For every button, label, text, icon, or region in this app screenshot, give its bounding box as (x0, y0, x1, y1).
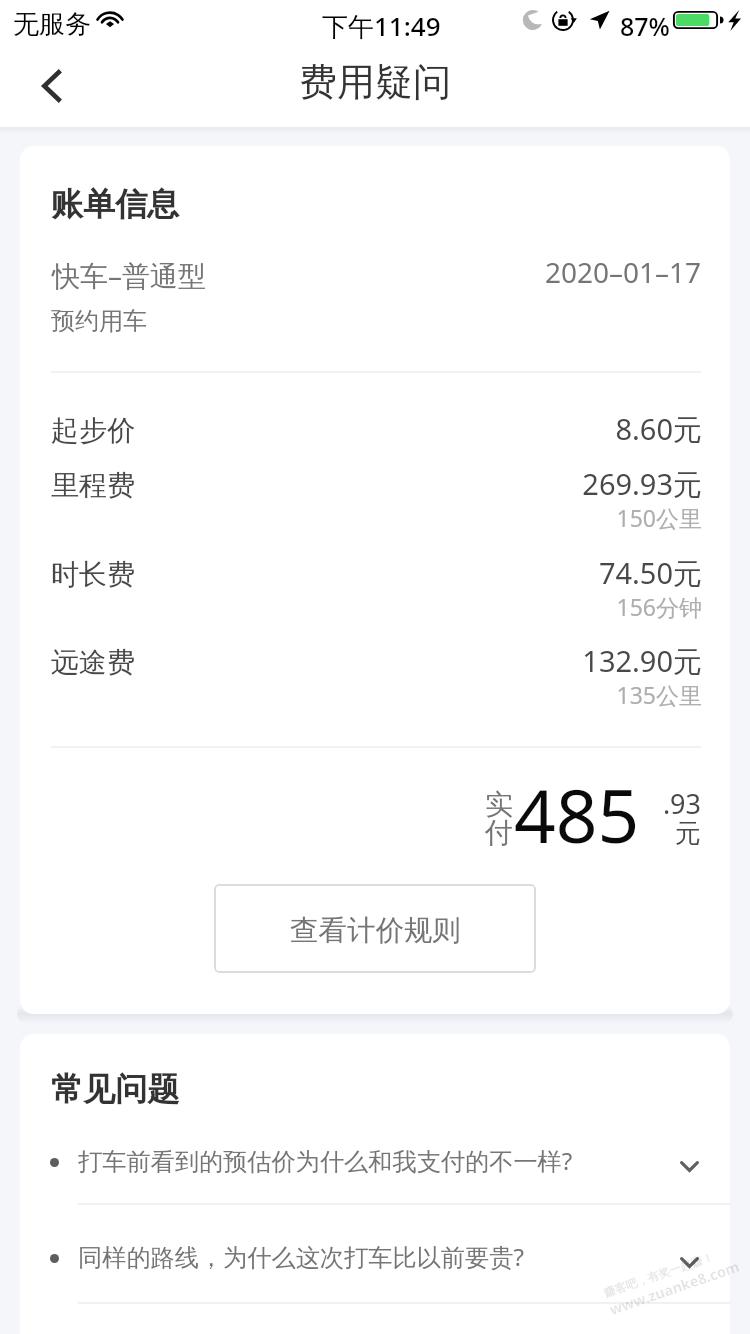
button[interactable]: 同样的路线，为什么这次打车比以前要贵? (20, 1216, 730, 1298)
staticText: .93 (662, 785, 701, 822)
staticText: 下午11:49 (322, 8, 441, 44)
staticText: 常见问题 (51, 1069, 179, 1109)
staticText: 135公里 (616, 679, 702, 710)
staticText: 赚客吧，有奖一起赚！ (602, 1249, 715, 1300)
staticText: 元 (675, 817, 701, 850)
staticText: 远途费 (51, 645, 135, 680)
staticText: 里程费 (51, 468, 135, 503)
staticText: 起步价 (51, 413, 135, 448)
button[interactable]: 查看计价规则 (214, 884, 536, 973)
staticText: 无服务 (13, 8, 91, 41)
staticText: 74.50元 (598, 553, 702, 593)
staticText: 485 (514, 765, 640, 864)
staticText: 同样的路线，为什么这次打车比以前要贵? (78, 1240, 524, 1273)
staticText: 快车–普通型 (52, 256, 207, 294)
staticText: 实 付 (485, 787, 513, 850)
staticText: 时长费 (51, 557, 135, 592)
staticText: 2020–01–17 (545, 253, 702, 291)
staticText: 150公里 (616, 502, 702, 533)
staticText: 132.90元 (582, 641, 702, 681)
staticText: 156分钟 (616, 591, 702, 622)
button[interactable]: 打车前看到的预估价为什么和我支付的不一样? (20, 1120, 730, 1202)
staticText: 预约用车 (51, 306, 147, 336)
staticText: 8.60元 (615, 409, 702, 449)
staticText: 账单信息 (51, 184, 179, 224)
staticText: 费用疑问 (299, 58, 451, 106)
staticText: 打车前看到的预估价为什么和我支付的不一样? (78, 1144, 573, 1177)
staticText: 87% (620, 9, 670, 43)
staticText: 查看计价规则 (290, 913, 461, 949)
staticText: www.zuanke8.com (606, 1256, 742, 1319)
button[interactable]: Back (20, 55, 82, 117)
staticText: 269.93元 (582, 464, 702, 504)
